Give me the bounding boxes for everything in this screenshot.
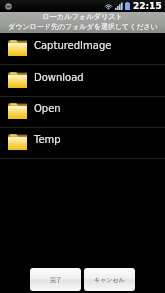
staticText: Temp [34, 134, 61, 146]
button[interactable]: CapturedImage [0, 34, 165, 65]
button[interactable]: Download [0, 66, 165, 97]
staticText: キャンセル [94, 276, 125, 284]
button[interactable]: Open [0, 97, 165, 128]
staticText: ローカルフォルダリスト [42, 12, 123, 21]
staticText: CapturedImage [34, 40, 112, 52]
staticText: ダウンロード先のフォルダを選択してください [8, 22, 158, 31]
staticText: Download [34, 72, 84, 84]
button[interactable]: Temp [0, 128, 165, 159]
staticText: 完了 [50, 276, 62, 284]
staticText: Open [34, 103, 61, 115]
button[interactable]: 完了 [30, 268, 81, 291]
staticText: 22:15 [133, 1, 162, 11]
button[interactable]: キャンセル [84, 268, 135, 291]
